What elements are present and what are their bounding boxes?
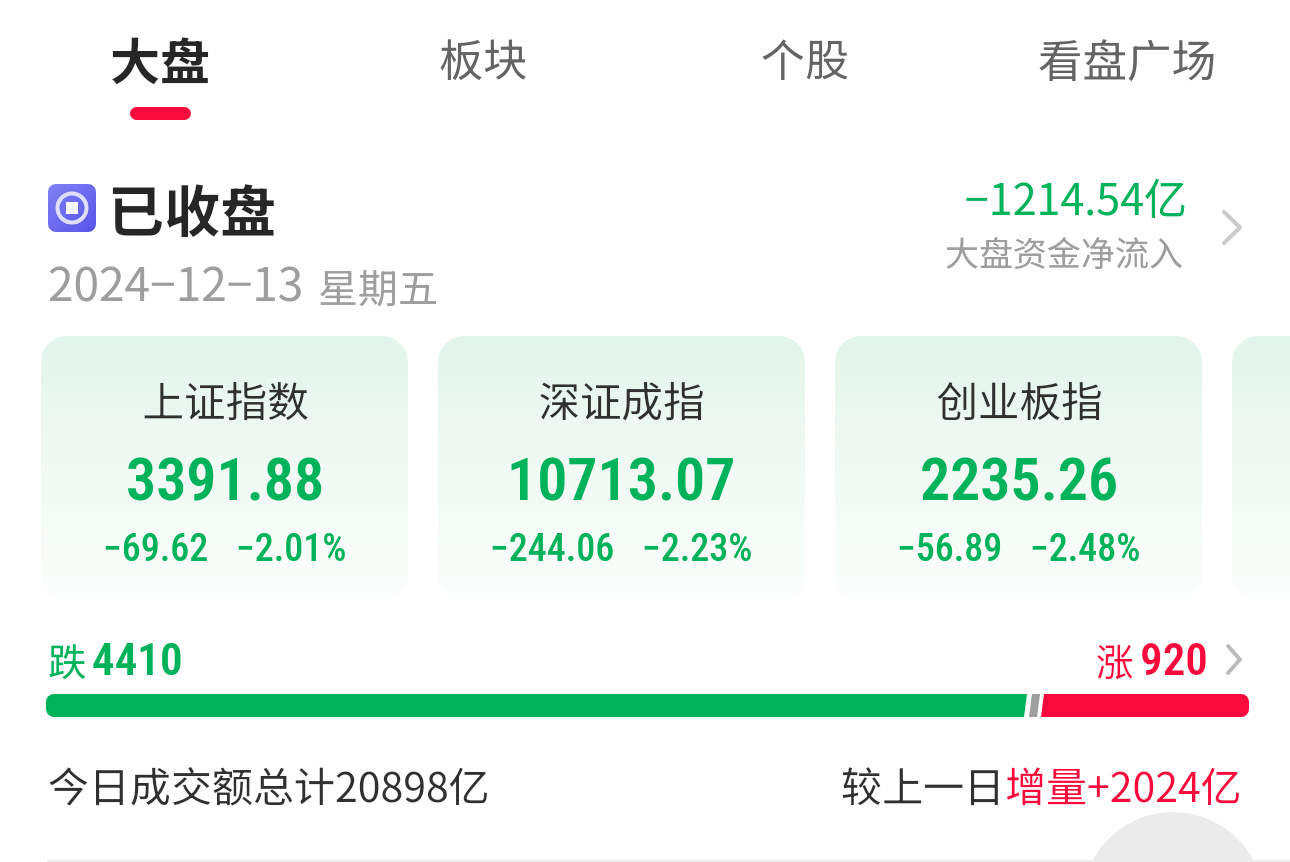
staticText: 4410 <box>92 633 183 686</box>
staticText: −244.06 <box>490 526 615 571</box>
staticText: 2235.26 <box>920 444 1119 514</box>
button[interactable]: 大盘 <box>100 22 220 132</box>
button[interactable]: 个股 <box>751 25 859 105</box>
button[interactable] <box>1232 336 1290 600</box>
staticText: 深证成指 <box>538 369 705 429</box>
staticText: 10713.07 <box>507 444 736 514</box>
other: More details <box>1226 644 1242 675</box>
button[interactable]: 跌 <box>48 628 1242 690</box>
button[interactable]: 看盘广场 <box>1028 25 1226 105</box>
staticText: 创业板指 <box>936 369 1103 429</box>
button[interactable]: 板块 <box>429 25 537 105</box>
staticText: −1214.54亿 <box>965 165 1188 227</box>
staticText: 今日成交额总计20898亿 <box>48 754 490 813</box>
staticText: 板块 <box>439 25 527 89</box>
staticText: 涨 <box>1096 632 1135 687</box>
staticText: 已收盘 <box>108 167 276 248</box>
staticText: 2024−12−13 <box>48 248 304 315</box>
staticText: 3391.88 <box>126 444 325 514</box>
staticText: 上证指数 <box>142 369 309 429</box>
staticText: −2.48% <box>1030 526 1141 571</box>
staticText: 920 <box>1140 633 1208 686</box>
staticText: 较上一日 <box>841 754 1005 813</box>
button[interactable]: 创业板指 <box>835 336 1202 600</box>
button[interactable]: 上证指数 <box>41 336 408 600</box>
staticText: 大盘 <box>110 22 210 94</box>
other: More details <box>1222 210 1242 245</box>
staticText: 大盘资金净流入 <box>945 227 1183 276</box>
staticText: 看盘广场 <box>1038 25 1217 89</box>
staticText: −2.01% <box>236 526 347 571</box>
button[interactable]: 深证成指 <box>438 336 805 600</box>
staticText: −2.23% <box>642 526 753 571</box>
staticText: 增量+2024亿 <box>1005 754 1242 813</box>
staticText: −56.89 <box>897 526 1003 571</box>
staticText: 跌 <box>48 632 87 687</box>
staticText: −69.62 <box>103 526 209 571</box>
staticText: 个股 <box>761 25 849 89</box>
staticText: 星期五 <box>318 257 438 315</box>
button[interactable]: −1214.54亿 <box>940 157 1270 287</box>
